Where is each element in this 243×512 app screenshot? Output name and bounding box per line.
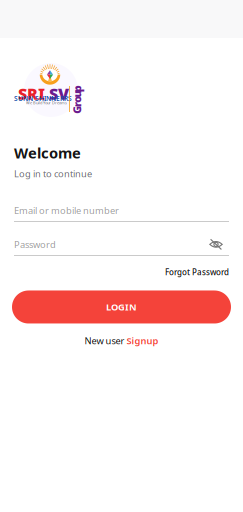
staticText: r bbox=[74, 97, 79, 112]
button[interactable]: Show password bbox=[209, 238, 229, 250]
staticText: o bbox=[73, 92, 80, 106]
staticText: G bbox=[73, 103, 81, 117]
staticText: LOGIN bbox=[106, 301, 137, 313]
button[interactable]: Signup bbox=[126, 334, 158, 347]
staticText: Password bbox=[14, 238, 56, 251]
staticText: Log in to continue bbox=[14, 167, 92, 180]
button[interactable]: LOGIN bbox=[12, 290, 231, 323]
staticText: p bbox=[73, 82, 80, 96]
staticText: We Build Your Dreams bbox=[26, 100, 67, 105]
staticText: Forgot Password bbox=[165, 267, 229, 277]
button[interactable]: Forgot Password bbox=[165, 267, 229, 277]
staticText: SRI bbox=[18, 83, 45, 104]
staticText: Welcome bbox=[14, 143, 81, 162]
staticText: New user bbox=[84, 334, 126, 347]
staticText: SV bbox=[49, 83, 69, 104]
staticText: u bbox=[73, 87, 80, 101]
staticText: SUNN SHINNERRS bbox=[14, 94, 72, 103]
staticText: Email or mobile number bbox=[14, 204, 119, 217]
staticText: Signup bbox=[126, 334, 158, 347]
